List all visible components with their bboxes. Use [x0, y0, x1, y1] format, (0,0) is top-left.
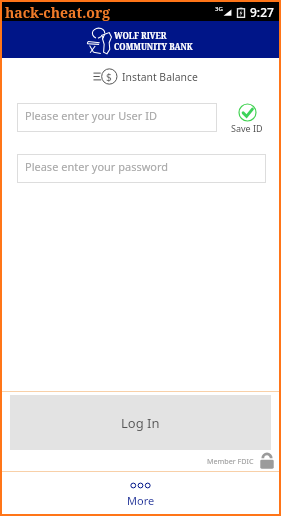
button[interactable]: Please enter your password: [17, 154, 266, 183]
staticText: hack-cheat.org: [5, 3, 111, 22]
staticText: Instant Balance: [122, 70, 198, 84]
staticText: Please enter your password: [25, 159, 169, 174]
button[interactable]: Save ID: [231, 103, 263, 134]
staticText: 3G: [215, 5, 223, 13]
staticText: COMMUNITY BANK: [114, 41, 193, 52]
button[interactable]: Please enter your User ID: [17, 103, 217, 132]
staticText: Save ID: [231, 122, 263, 134]
staticText: More: [127, 493, 155, 508]
staticText: $: [106, 70, 112, 84]
button[interactable]: Log In: [10, 395, 271, 450]
staticText: 9:27: [250, 4, 274, 20]
other: Secure: [260, 453, 274, 469]
staticText: Log In: [121, 414, 160, 432]
staticText: Please enter your User ID: [25, 108, 157, 123]
button[interactable]: $: [2, 65, 279, 88]
staticText: Member FDIC: [207, 456, 254, 466]
staticText: WOLF RIVER: [114, 30, 167, 41]
button[interactable]: More: [2, 472, 279, 514]
